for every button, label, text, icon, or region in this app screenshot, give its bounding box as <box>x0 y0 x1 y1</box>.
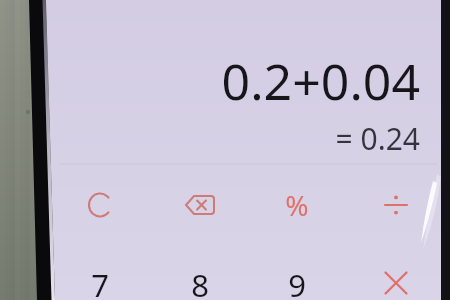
staticText: 9 <box>288 264 306 300</box>
button[interactable]: Nine <box>249 250 347 300</box>
staticText: 7 <box>91 264 109 300</box>
button[interactable]: Seven <box>53 250 151 300</box>
button[interactable]: Clear <box>52 172 150 238</box>
staticText: 0.2+0.04 <box>221 47 420 105</box>
button[interactable]: Eight <box>151 250 249 300</box>
button[interactable]: Backspace <box>150 172 248 238</box>
staticText: % <box>285 186 309 224</box>
staticText: = 0.24 <box>335 118 420 152</box>
button[interactable]: Divide <box>346 172 441 238</box>
staticText: 8 <box>191 264 209 300</box>
button[interactable]: Multiply <box>347 250 441 300</box>
button[interactable]: Percent <box>248 172 346 238</box>
